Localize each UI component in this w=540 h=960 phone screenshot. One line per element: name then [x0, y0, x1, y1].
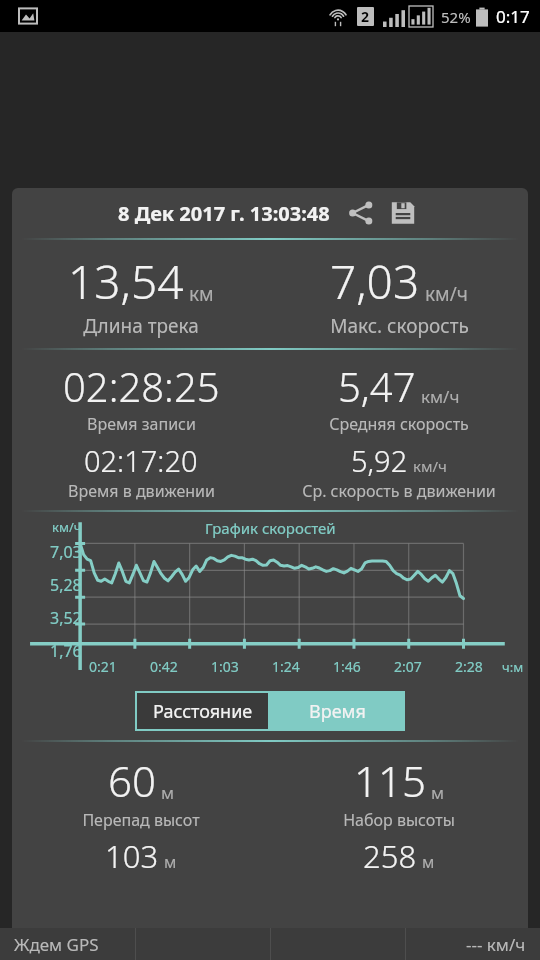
button[interactable]: Ждем GPS — [0, 928, 135, 960]
staticText: 5,92 — [351, 441, 408, 480]
staticText: Время в движении — [68, 480, 215, 502]
staticText: Перепад высот — [82, 809, 200, 831]
staticText: 1:03 — [211, 657, 239, 676]
staticText: 0:21 — [89, 657, 117, 676]
staticText: 5,28 — [50, 574, 82, 596]
staticText: 0:42 — [150, 657, 178, 676]
button[interactable]: --- км/ч — [406, 928, 540, 960]
staticText: км/ч — [425, 281, 468, 307]
staticText: км/ч — [52, 518, 82, 536]
staticText: Набор высоты — [343, 809, 455, 831]
staticText: 1:24 — [272, 657, 300, 676]
staticText: 02:17:20 — [84, 441, 198, 480]
button[interactable]: Расстояние — [137, 693, 268, 729]
staticText: 258 — [363, 835, 417, 877]
staticText: 5,47 — [338, 359, 416, 413]
staticText: 115 — [354, 752, 426, 809]
staticText: 103 — [105, 835, 159, 877]
staticText: км/ч — [413, 456, 447, 476]
staticText: Длина трека — [83, 313, 199, 339]
staticText: м — [161, 781, 175, 804]
staticText: 8 Дек 2017 г. 13:03:48 — [118, 200, 330, 227]
staticText: Ждем GPS — [14, 933, 99, 956]
staticText: Время записи — [87, 413, 196, 435]
staticText: м — [422, 851, 435, 873]
staticText: График скоростей — [205, 518, 336, 538]
staticText: Ср. скорость в движении — [302, 480, 496, 502]
button[interactable]: Save — [384, 194, 422, 232]
staticText: км/ч — [421, 385, 460, 408]
staticText: Время — [309, 699, 366, 724]
staticText: 13,54 — [68, 250, 184, 313]
staticText: Средняя скорость — [329, 413, 469, 435]
staticText: 1,76 — [50, 640, 82, 662]
staticText: Расстояние — [153, 699, 253, 724]
staticText: 02:28:25 — [63, 359, 220, 413]
button[interactable]: Время — [270, 691, 405, 731]
staticText: Макс. скорость — [330, 313, 469, 339]
staticText: м — [431, 781, 445, 804]
staticText: 2 — [361, 7, 370, 26]
staticText: км — [189, 281, 214, 307]
staticText: 3,52 — [50, 607, 82, 629]
staticText: --- км/ч — [466, 933, 526, 956]
button[interactable]: Share — [342, 194, 380, 232]
staticText: 2:28 — [455, 657, 483, 676]
staticText: 7,03 — [50, 541, 82, 563]
staticText: 0:17 — [496, 5, 530, 28]
staticText: ч:м — [502, 658, 524, 676]
staticText: 7,03 — [330, 250, 420, 313]
staticText: 60 — [108, 752, 156, 809]
staticText: 52% — [441, 7, 471, 27]
staticText: м — [164, 851, 177, 873]
staticText: 1:46 — [333, 657, 361, 676]
staticText: 2:07 — [394, 657, 422, 676]
